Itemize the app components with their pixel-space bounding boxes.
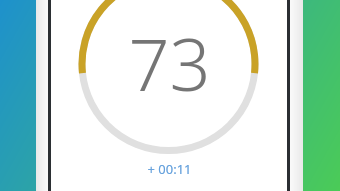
button[interactable]: Heart rate 73, elapsed 00:11 <box>51 0 287 191</box>
staticText: 73 <box>128 14 211 112</box>
staticText: + 00:11 <box>147 160 192 178</box>
